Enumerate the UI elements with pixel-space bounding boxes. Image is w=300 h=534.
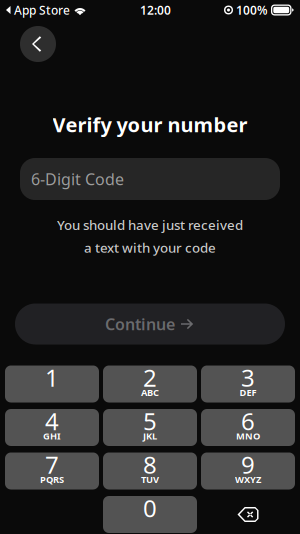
- staticText: 5: [143, 405, 157, 437]
- staticText: JKL: [143, 430, 157, 442]
- staticText: PQRS: [40, 473, 64, 486]
- staticText: 7: [45, 449, 59, 480]
- staticText: 6-Digit Code: [31, 168, 124, 190]
- button[interactable]: 9: [201, 452, 295, 489]
- staticText: 4: [45, 405, 59, 437]
- button[interactable]: 6: [201, 409, 295, 446]
- staticText: MNO: [236, 430, 260, 442]
- button[interactable]: 2: [103, 365, 197, 402]
- staticText: 9: [241, 449, 255, 480]
- staticText: 0: [143, 492, 157, 524]
- staticText: 8: [143, 449, 157, 480]
- button[interactable]: 8: [103, 452, 197, 489]
- staticText: You should have just received: [57, 216, 243, 234]
- staticText: 1: [45, 362, 59, 393]
- staticText: GHI: [43, 430, 61, 442]
- staticText: App Store: [11, 2, 70, 18]
- button[interactable]: Back: [20, 26, 56, 62]
- button[interactable]: Delete: [201, 496, 295, 533]
- staticText: ABC: [141, 386, 159, 399]
- button[interactable]: 4: [5, 409, 99, 446]
- staticText: 3: [241, 362, 255, 393]
- staticText: Verify your number: [52, 111, 247, 138]
- staticText: a text with your code: [84, 239, 216, 256]
- staticText: WXYZ: [235, 473, 261, 486]
- staticText: 2: [143, 362, 157, 393]
- staticText: DEF: [239, 386, 256, 399]
- button[interactable]: Continue: [15, 303, 285, 344]
- button[interactable]: 3: [201, 365, 295, 402]
- button[interactable]: 0: [103, 496, 197, 533]
- staticText: TUV: [141, 473, 159, 486]
- staticText: Continue: [105, 313, 175, 335]
- staticText: 6: [241, 405, 255, 437]
- staticText: 100%: [233, 2, 268, 18]
- button[interactable]: 1: [5, 365, 99, 402]
- button[interactable]: 5: [103, 409, 197, 446]
- staticText: 12:00: [140, 2, 171, 18]
- button[interactable]: 7: [5, 452, 99, 489]
